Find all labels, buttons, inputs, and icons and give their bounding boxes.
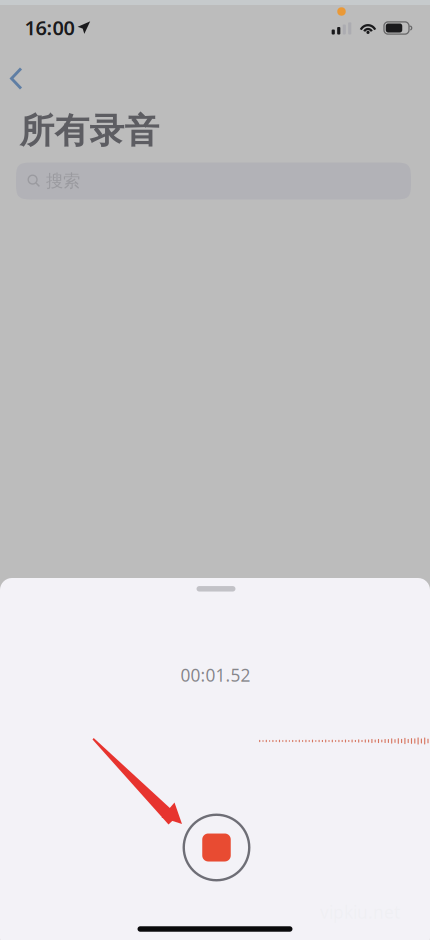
button[interactable]: 停止录音 (180, 811, 252, 883)
button[interactable]: 返回 (0, 56, 38, 100)
staticText: 00:01.52 (180, 663, 250, 686)
staticText: 16:00 (24, 14, 74, 41)
staticText: 所有录音 (19, 110, 159, 152)
staticText: 搜索 (46, 170, 80, 192)
